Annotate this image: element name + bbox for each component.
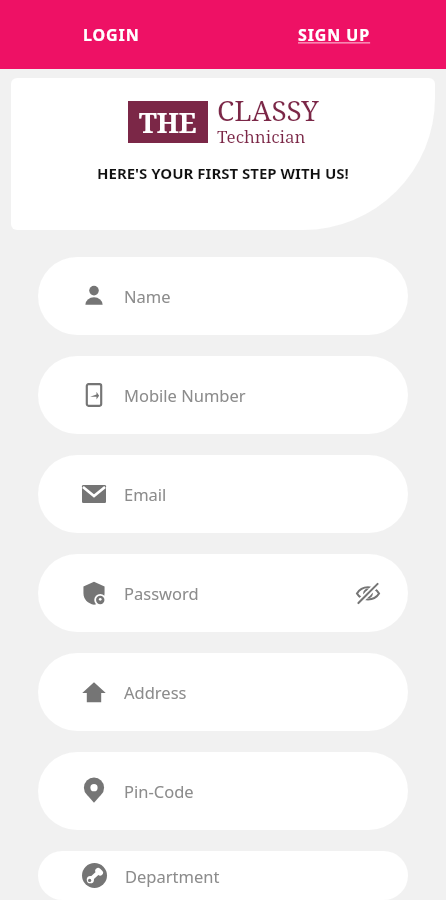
staticText: LOGIN [83,24,140,46]
button[interactable]: Department [38,851,408,900]
button[interactable]: LOGIN [0,0,223,69]
staticText: HERE'S YOUR FIRST STEP WITH US! [97,163,349,183]
button[interactable]: Show password [199,554,380,632]
staticText: CLASSY [217,91,319,129]
staticText: Email [124,483,167,505]
staticText: Mobile Number [124,384,246,406]
staticText: Pin-Code [124,780,194,802]
staticText: Password [124,582,199,604]
staticText: Name [124,285,171,307]
button[interactable]: Email [38,455,408,533]
button[interactable]: Pin-Code [38,752,408,830]
staticText: THE [139,104,197,141]
button[interactable]: Name [38,257,408,335]
button[interactable]: Address [38,653,408,731]
staticText: Department [125,865,220,887]
button[interactable]: Mobile Number [38,356,408,434]
button[interactable]: Password [38,554,408,632]
staticText: Technician [217,125,306,148]
staticText: Address [124,681,187,703]
button[interactable]: SIGN UP [223,0,446,69]
staticText: SIGN UP [298,24,371,46]
